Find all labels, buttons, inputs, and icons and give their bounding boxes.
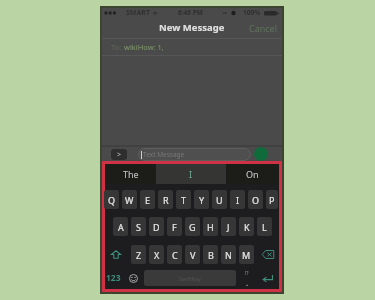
button[interactable]: Text Message bbox=[138, 148, 251, 161]
staticText: To: bbox=[111, 42, 122, 52]
staticText: P bbox=[269, 194, 275, 206]
button[interactable]: Cancel bbox=[245, 18, 282, 38]
button[interactable]: I bbox=[156, 164, 226, 184]
button[interactable]: C bbox=[167, 245, 182, 264]
button[interactable]: M bbox=[239, 245, 254, 264]
staticText: K bbox=[244, 221, 250, 233]
staticText: wikiHow: 1, bbox=[124, 42, 164, 52]
staticText: S bbox=[136, 221, 141, 233]
button[interactable]: R bbox=[158, 190, 173, 209]
button[interactable]: E bbox=[140, 190, 155, 209]
staticText: SMART bbox=[126, 8, 150, 17]
button[interactable]: Attach bbox=[111, 149, 127, 160]
staticText: Y bbox=[199, 194, 205, 206]
staticText: X bbox=[154, 249, 160, 261]
staticText: Z bbox=[136, 249, 142, 261]
staticText: The bbox=[123, 168, 139, 180]
staticText: Text Message bbox=[143, 150, 185, 159]
button[interactable]: O bbox=[248, 190, 263, 209]
button[interactable]: Z bbox=[131, 245, 146, 264]
staticText: I bbox=[189, 168, 193, 180]
staticText: D bbox=[153, 221, 160, 233]
button[interactable]: L bbox=[257, 217, 272, 236]
staticText: H bbox=[207, 221, 214, 233]
staticText: SwiftKey bbox=[179, 275, 201, 282]
button[interactable]: !? bbox=[239, 270, 254, 286]
staticText: !? bbox=[245, 270, 249, 277]
staticText: E bbox=[145, 194, 151, 206]
staticText: C bbox=[172, 249, 178, 261]
button[interactable]: Y bbox=[194, 190, 209, 209]
staticText: A bbox=[118, 221, 124, 233]
staticText: On bbox=[246, 168, 259, 180]
button[interactable]: A bbox=[113, 217, 128, 236]
staticText: W bbox=[125, 194, 134, 206]
button[interactable]: S bbox=[131, 217, 146, 236]
button[interactable]: The bbox=[105, 164, 156, 184]
button[interactable]: G bbox=[185, 217, 200, 236]
staticText: V bbox=[190, 249, 196, 261]
staticText: F bbox=[172, 221, 177, 233]
button[interactable]: V bbox=[185, 245, 200, 264]
button[interactable]: P bbox=[266, 190, 278, 209]
staticText: 123 bbox=[106, 272, 121, 284]
staticText: T bbox=[181, 194, 187, 206]
button[interactable]: F bbox=[167, 217, 182, 236]
button[interactable]: K bbox=[239, 217, 254, 236]
button[interactable]: Emoji bbox=[126, 270, 141, 286]
button[interactable]: W bbox=[122, 190, 137, 209]
button[interactable]: Q bbox=[104, 190, 119, 209]
staticText: Q bbox=[108, 194, 116, 206]
staticText: O bbox=[252, 194, 260, 206]
staticText: R bbox=[163, 194, 169, 206]
staticText: G bbox=[189, 221, 196, 233]
button[interactable]: Enter bbox=[257, 270, 277, 286]
staticText: New Message bbox=[159, 21, 225, 34]
button[interactable]: T bbox=[176, 190, 191, 209]
staticText: B bbox=[208, 249, 214, 261]
button[interactable]: On bbox=[226, 164, 279, 184]
staticText: L bbox=[262, 221, 267, 233]
button[interactable]: J bbox=[221, 217, 236, 236]
staticText: 6:46 PM bbox=[178, 8, 203, 17]
staticText: M bbox=[242, 249, 251, 261]
button[interactable]: Send bbox=[254, 147, 268, 161]
staticText: 100% bbox=[243, 8, 261, 17]
staticText: Cancel bbox=[249, 22, 278, 34]
button[interactable]: N bbox=[221, 245, 236, 264]
button[interactable]: Shift bbox=[104, 245, 128, 264]
button[interactable]: 123 bbox=[103, 270, 123, 286]
staticText: N bbox=[225, 249, 232, 261]
staticText: > bbox=[117, 150, 122, 160]
staticText: . bbox=[246, 277, 249, 286]
button[interactable]: B bbox=[203, 245, 218, 264]
button[interactable]: Backspace bbox=[257, 245, 278, 264]
button[interactable]: I bbox=[230, 190, 245, 209]
button[interactable]: U bbox=[212, 190, 227, 209]
staticText: I bbox=[236, 194, 240, 206]
button[interactable]: X bbox=[149, 245, 164, 264]
staticText: J bbox=[227, 221, 230, 233]
staticText: U bbox=[216, 194, 223, 206]
button[interactable]: H bbox=[203, 217, 218, 236]
button[interactable]: D bbox=[149, 217, 164, 236]
